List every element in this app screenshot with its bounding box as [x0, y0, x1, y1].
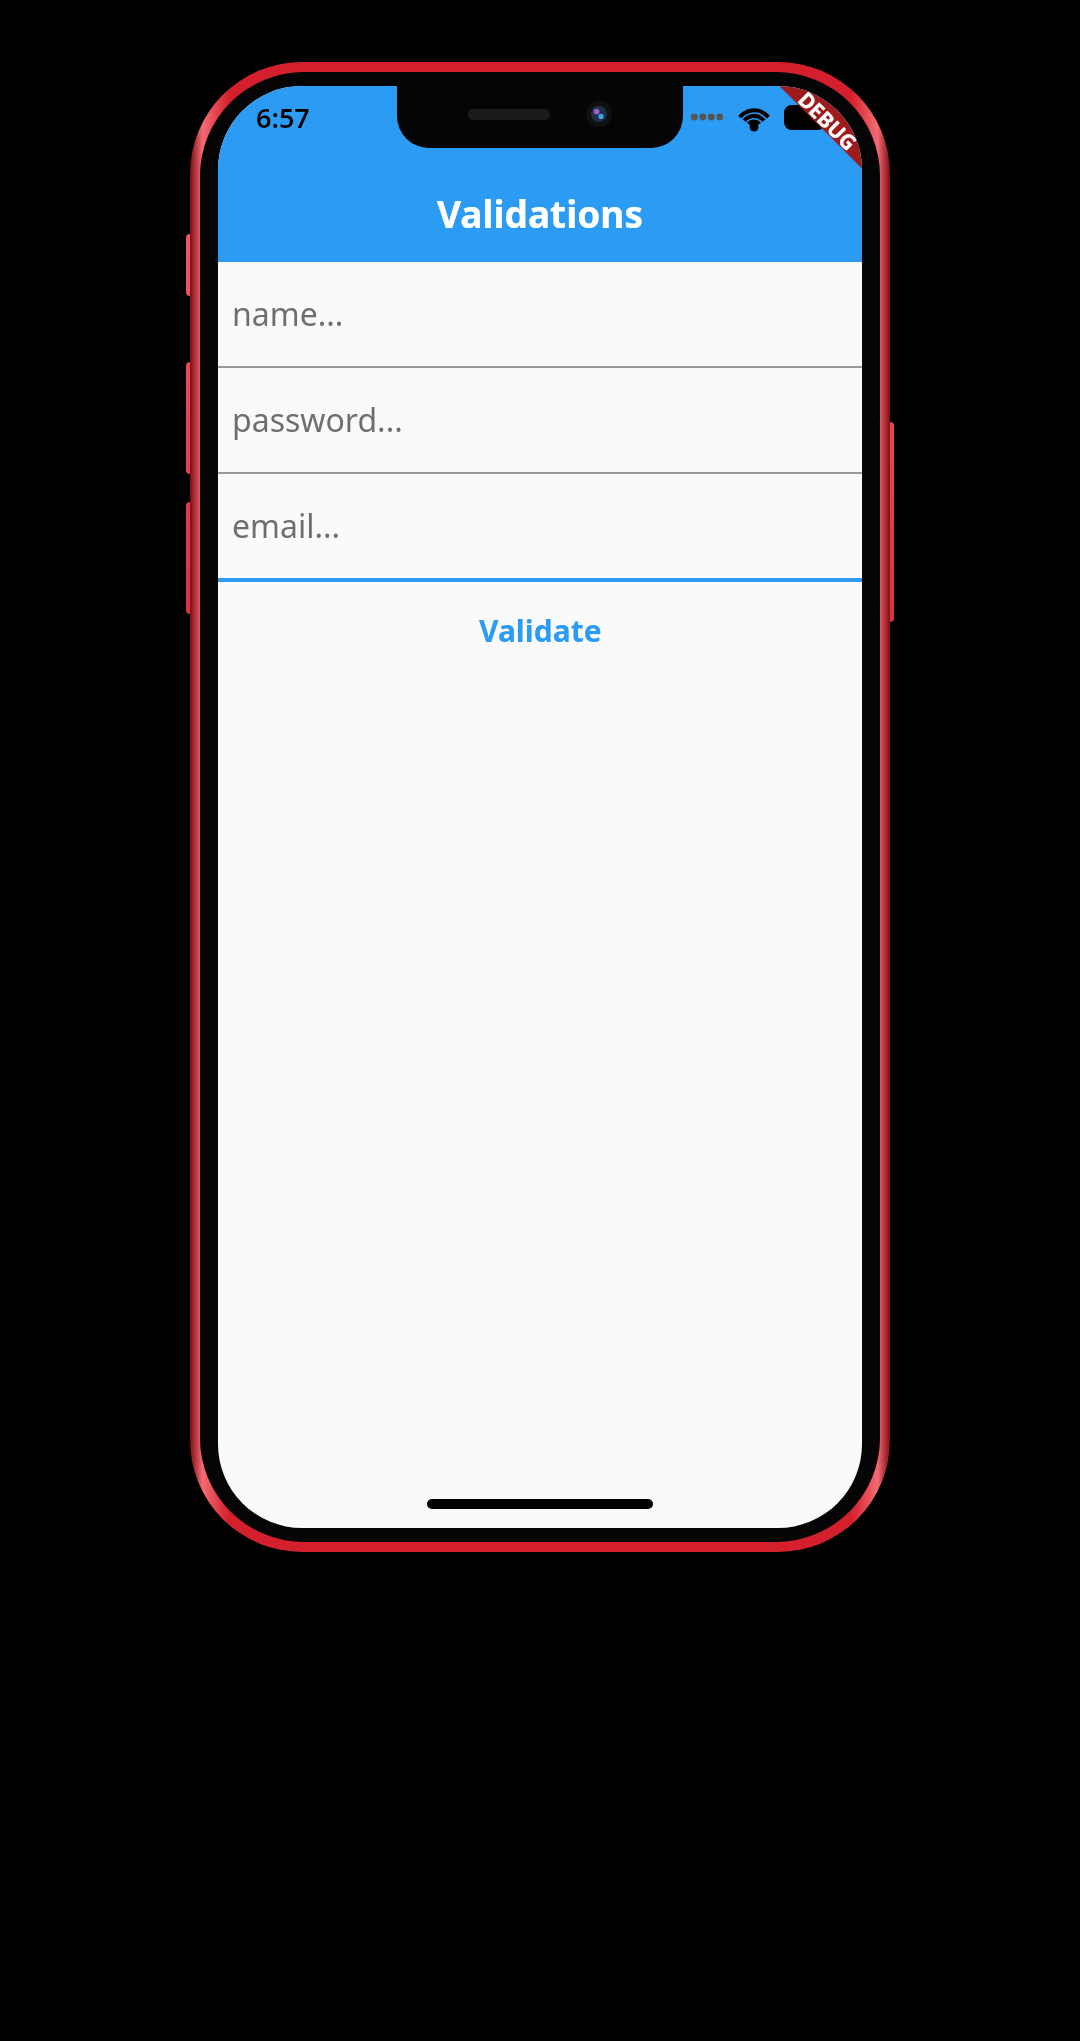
other: Wi-Fi	[736, 104, 772, 131]
other: Cellular signal	[690, 108, 724, 126]
staticText: email...	[232, 504, 341, 548]
staticText: password...	[232, 398, 403, 442]
button[interactable]: Validate	[218, 600, 862, 661]
button[interactable]: email...	[218, 474, 862, 582]
other: Battery	[784, 105, 832, 130]
staticText: 6:57	[256, 99, 310, 136]
button[interactable]: password...	[218, 368, 862, 474]
button[interactable]: name...	[218, 262, 862, 368]
staticText: Validations	[437, 188, 643, 238]
staticText: Validate	[479, 610, 602, 651]
staticText: DEBUG	[791, 86, 862, 158]
staticText: name...	[232, 292, 344, 336]
